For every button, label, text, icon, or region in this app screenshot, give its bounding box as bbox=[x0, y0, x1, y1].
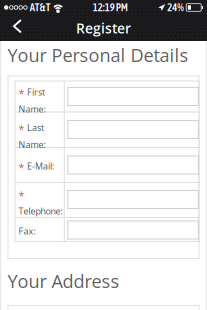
button[interactable]: Back bbox=[3, 13, 31, 39]
staticText: First bbox=[27, 86, 45, 98]
staticText: Fax: bbox=[18, 225, 35, 237]
staticText: AT&T bbox=[30, 1, 51, 14]
staticText: 24% bbox=[167, 1, 184, 14]
staticText: * bbox=[18, 121, 24, 136]
staticText: Your Personal Details bbox=[7, 43, 188, 67]
staticText: * bbox=[18, 160, 24, 174]
staticText: Your Address bbox=[7, 269, 119, 293]
staticText: * bbox=[18, 86, 24, 100]
staticText: 12:19 PM bbox=[93, 1, 128, 14]
staticText: Telephone: bbox=[18, 205, 62, 217]
staticText: Last bbox=[27, 121, 44, 134]
staticText: E-Mail: bbox=[27, 160, 54, 172]
staticText: * bbox=[18, 188, 24, 202]
staticText: Register bbox=[76, 19, 131, 37]
staticText: Name: bbox=[18, 138, 45, 151]
staticText: Name: bbox=[18, 103, 45, 115]
